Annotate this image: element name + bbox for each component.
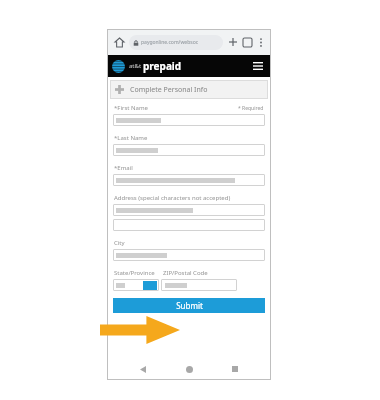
button[interactable]: [113, 249, 265, 261]
button[interactable]: Back: [133, 359, 153, 379]
button[interactable]: [113, 144, 265, 156]
button[interactable]: Recent apps: [225, 359, 245, 379]
staticText: ZIP/Postal Code: [163, 269, 208, 277]
button[interactable]: [113, 279, 159, 291]
button[interactable]: Complete Personal Info: [110, 80, 268, 99]
button[interactable]: New tab: [226, 35, 240, 49]
staticText: Complete Personal Info: [130, 85, 208, 95]
staticText: *Last Name: [114, 134, 148, 142]
button[interactable]: Tabs: [242, 37, 253, 48]
button[interactable]: [113, 204, 265, 216]
button[interactable]: Submit: [113, 298, 265, 313]
staticText: * Required: [238, 105, 264, 112]
button[interactable]: [113, 114, 265, 126]
button[interactable]: [161, 279, 237, 291]
button[interactable]: paygonline.com/websoc: [129, 35, 223, 50]
button[interactable]: Home: [111, 34, 127, 50]
button[interactable]: Menu: [250, 58, 266, 74]
staticText: prepaid: [143, 59, 182, 73]
staticText: State/Province: [114, 269, 155, 277]
staticText: at&t: [129, 62, 142, 70]
staticText: City: [114, 239, 125, 247]
staticText: Address (special characters not accepted…: [114, 194, 231, 202]
button[interactable]: More options: [255, 36, 267, 48]
button[interactable]: [113, 219, 265, 231]
staticText: Submit: [176, 300, 203, 311]
button[interactable]: [113, 174, 265, 186]
staticText: *First Name: [114, 104, 148, 112]
staticText: paygonline.com/websoc: [141, 39, 199, 46]
button[interactable]: Home: [179, 359, 199, 379]
staticText: *Email: [114, 164, 133, 172]
